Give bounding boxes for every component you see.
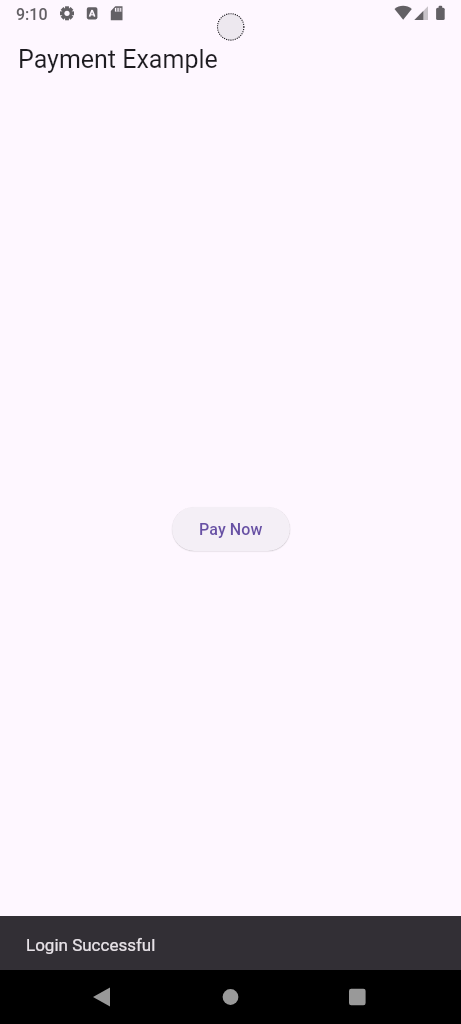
button[interactable]: Back xyxy=(78,970,128,1024)
staticText: Payment Example xyxy=(18,45,218,74)
button[interactable]: Home xyxy=(205,970,256,1024)
button[interactable]: Pay Now xyxy=(172,507,290,551)
staticText: Login Successful xyxy=(26,935,156,955)
staticText: 9:10 xyxy=(16,5,48,24)
staticText: Pay Now xyxy=(199,520,263,539)
button[interactable]: Login Successful xyxy=(0,916,461,970)
button[interactable]: Recent apps xyxy=(332,970,383,1024)
